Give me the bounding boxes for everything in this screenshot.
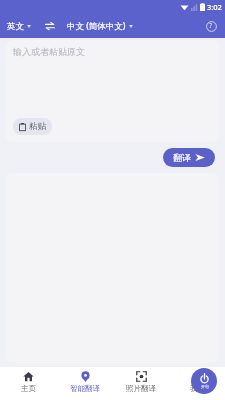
- button[interactable]: 我的: [169, 367, 225, 400]
- button[interactable]: 照片翻译: [113, 367, 169, 400]
- button[interactable]: 翻译: [163, 148, 215, 167]
- button[interactable]: 粘贴: [13, 118, 52, 135]
- staticText: ?: [209, 21, 213, 31]
- button[interactable]: 英文: [6, 20, 32, 33]
- staticText: 开启: [201, 384, 209, 389]
- staticText: 英文: [7, 21, 24, 32]
- button[interactable]: 主页: [0, 367, 57, 400]
- button[interactable]: Swap languages: [42, 18, 58, 34]
- staticText: 翻译: [173, 152, 191, 163]
- staticText: 我的: [190, 384, 205, 393]
- button[interactable]: Power: [191, 368, 217, 394]
- staticText: 主页: [21, 384, 36, 393]
- staticText: 照片翻译: [126, 384, 156, 393]
- button[interactable]: Help: [202, 17, 220, 35]
- staticText: 智能翻译: [70, 384, 100, 393]
- button[interactable]: 输入或者粘贴原文: [6, 40, 219, 142]
- staticText: 中文 (简体中文): [67, 20, 126, 32]
- staticText: 3:02: [207, 2, 222, 12]
- button[interactable]: 智能翻译: [57, 367, 113, 400]
- button[interactable]: 中文 (简体中文): [66, 19, 134, 33]
- staticText: 输入或者粘贴原文: [13, 46, 85, 57]
- staticText: 粘贴: [29, 121, 46, 132]
